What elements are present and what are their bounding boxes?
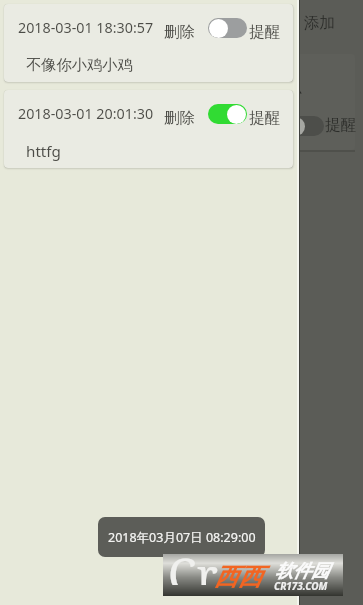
staticText: 小 xyxy=(287,82,302,101)
staticText: 添加 xyxy=(304,13,335,33)
staticText: 提醒 xyxy=(325,115,356,135)
staticText: 删除 xyxy=(164,108,195,128)
button[interactable]: Reminder on xyxy=(208,104,247,124)
staticText: Cr xyxy=(168,554,218,585)
staticText: httfg xyxy=(26,141,61,162)
staticText: 提醒 xyxy=(249,22,280,42)
staticText: 删除 xyxy=(164,22,195,42)
staticText: 2018-03-01 20:01:30 xyxy=(18,104,154,123)
staticText: 2018-03-01 18:30:57 xyxy=(18,18,154,37)
staticText: 提醒 xyxy=(249,108,280,128)
staticText: 不像你小鸡小鸡 xyxy=(26,55,133,74)
other: Reminder toggle xyxy=(285,116,324,136)
button[interactable]: Reminder off xyxy=(208,18,247,38)
button[interactable]: 添加 xyxy=(304,13,335,33)
button[interactable]: 2018-03-01 18:30:57 xyxy=(4,4,293,82)
staticText: 2018年03月07日 08:29:00 xyxy=(108,529,256,546)
button[interactable]: 删除 xyxy=(162,106,197,130)
button[interactable]: 2018-03-01 20:01:30 xyxy=(4,90,293,168)
staticText: CR173.COM xyxy=(274,579,328,593)
staticText: 西西 xyxy=(214,562,262,592)
staticText: 软件园 xyxy=(275,560,329,583)
button[interactable]: 删除 xyxy=(162,20,197,44)
